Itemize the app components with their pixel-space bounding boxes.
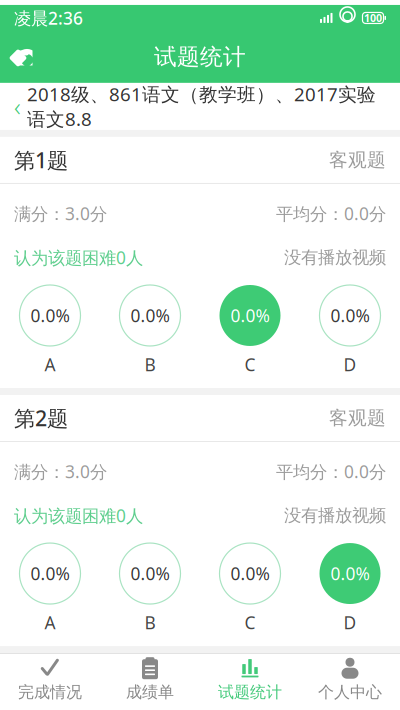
- staticText: ‹: [14, 90, 21, 123]
- staticText: 试题统计: [218, 682, 282, 702]
- staticText: D: [343, 353, 356, 376]
- staticText: 认为该题困难0人: [14, 504, 143, 527]
- staticText: B: [144, 353, 155, 376]
- staticText: 满分：3.0分: [14, 460, 107, 483]
- button[interactable]: 个人中心: [300, 654, 400, 705]
- staticText: D: [343, 611, 356, 634]
- staticText: A: [44, 353, 55, 376]
- staticText: 没有播放视频: [284, 505, 386, 526]
- button[interactable]: ‹: [0, 83, 400, 130]
- staticText: 客观题: [329, 406, 386, 429]
- staticText: B: [144, 611, 155, 634]
- button[interactable]: 成绩单: [100, 654, 200, 705]
- staticText: 认为该题困难0人: [14, 246, 143, 269]
- staticText: 2018级、861语文（教学班）、2017实验语文8.8: [27, 82, 376, 131]
- staticText: 0.0%: [230, 304, 269, 327]
- staticText: 平均分：0.0分: [276, 202, 386, 225]
- staticText: 0.0%: [130, 304, 169, 327]
- staticText: 第2题: [14, 404, 68, 432]
- staticText: 满分：3.0分: [14, 202, 107, 225]
- staticText: 0.0%: [230, 562, 269, 585]
- staticText: 个人中心: [318, 682, 382, 702]
- staticText: C: [244, 353, 255, 376]
- staticText: 100: [364, 11, 382, 25]
- button[interactable]: 试题统计: [200, 654, 300, 705]
- staticText: 完成情况: [18, 682, 82, 702]
- staticText: 平均分：0.0分: [276, 460, 386, 483]
- staticText: 0.0%: [30, 562, 69, 585]
- staticText: 0.0%: [330, 304, 369, 327]
- staticText: 没有播放视频: [284, 247, 386, 268]
- staticText: 第1题: [14, 146, 68, 174]
- staticText: A: [44, 611, 55, 634]
- button[interactable]: 完成情况: [0, 654, 100, 705]
- staticText: 0.0%: [330, 562, 369, 585]
- staticText: 0.0%: [30, 304, 69, 327]
- staticText: 凌晨2:36: [14, 6, 83, 29]
- staticText: 0.0%: [130, 562, 169, 585]
- button[interactable]: 返回: [0, 35, 48, 79]
- staticText: 客观题: [329, 148, 386, 171]
- staticText: 成绩单: [126, 682, 174, 702]
- staticText: C: [244, 611, 255, 634]
- staticText: 试题统计: [154, 43, 246, 71]
